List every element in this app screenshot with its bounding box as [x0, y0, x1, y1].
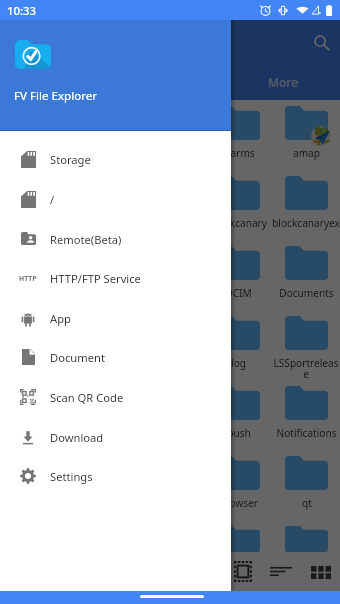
button[interactable]: Storage [0, 139, 231, 179]
button[interactable]: / [0, 179, 231, 219]
staticText: DCIM [225, 286, 252, 300]
button[interactable]: Search [304, 25, 338, 59]
staticText: amap [293, 146, 320, 160]
button[interactable]: Download [0, 417, 231, 457]
staticText: Scan QR Code [50, 390, 124, 405]
staticText: More [268, 74, 299, 90]
staticText: Download [50, 430, 104, 445]
staticText: log [231, 356, 246, 370]
button[interactable]: Remote(Beta) [0, 219, 231, 259]
staticText: qt [302, 496, 312, 510]
staticText: alarms [222, 146, 255, 160]
staticText: Document [50, 350, 105, 365]
button[interactable]: More [227, 64, 340, 100]
button[interactable]: Internal [0, 64, 114, 100]
staticText: blockcanaryex [272, 216, 340, 230]
staticText: HTTP [19, 274, 37, 283]
staticText: FV File Explorer [14, 88, 98, 104]
button[interactable]: Settings [0, 456, 231, 496]
staticText: LSSportrelease [272, 356, 340, 380]
button[interactable]: Scan QR Code [0, 377, 231, 417]
staticText: Storage [50, 152, 91, 167]
staticText: / [50, 192, 55, 207]
staticText: HTTP/FTP Service [50, 271, 141, 286]
button[interactable]: HTTP [0, 258, 231, 298]
button[interactable]: Sort [264, 552, 298, 591]
staticText: browser [219, 496, 258, 510]
staticText: Remote(Beta) [50, 232, 122, 247]
button[interactable]: Select all [226, 552, 260, 591]
button[interactable]: Grid view [304, 552, 338, 591]
button[interactable]: App [0, 298, 231, 338]
staticText: Notifications [276, 426, 337, 440]
staticText: push [227, 426, 251, 440]
staticText: 10:33 [7, 3, 36, 18]
staticText: App [50, 311, 71, 326]
button[interactable]: Document [0, 337, 231, 377]
staticText: Settings [50, 469, 93, 484]
staticText: blockcanary [210, 216, 267, 230]
staticText: Documents [279, 286, 334, 300]
